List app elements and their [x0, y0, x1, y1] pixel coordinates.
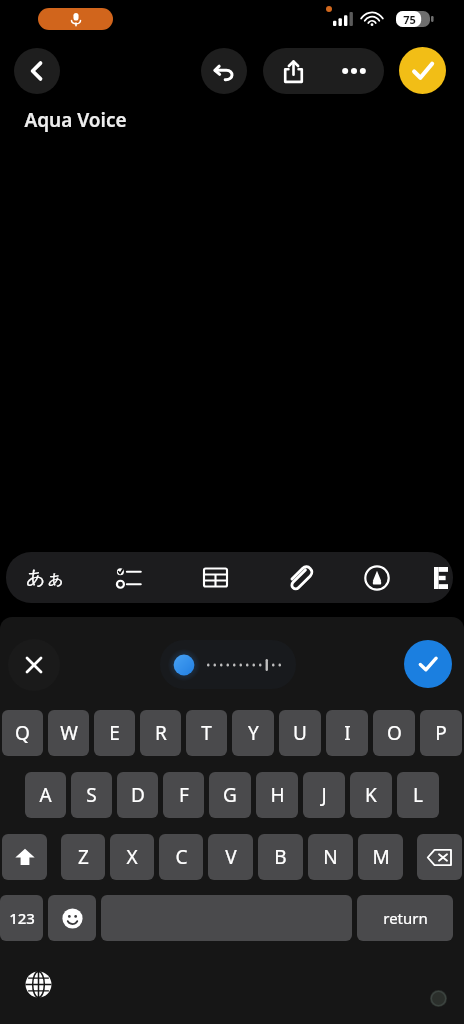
- button[interactable]: I: [326, 710, 368, 756]
- staticText: Aqua Voice: [24, 107, 127, 133]
- button[interactable]: Confirm dictation: [404, 640, 452, 688]
- staticText: F: [179, 782, 189, 808]
- button[interactable]: Shift: [2, 834, 47, 880]
- button[interactable]: C: [159, 834, 203, 880]
- button[interactable]: Dictation waveform: [160, 640, 296, 689]
- staticText: H: [270, 782, 285, 808]
- staticText: R: [155, 720, 167, 746]
- button[interactable]: O: [373, 710, 415, 756]
- staticText: B: [274, 844, 287, 870]
- button[interactable]: Share: [263, 48, 323, 94]
- button[interactable]: Done: [399, 47, 446, 94]
- button[interactable]: X: [110, 834, 154, 880]
- button[interactable]: R: [140, 710, 181, 756]
- button[interactable]: Table: [187, 552, 243, 603]
- button[interactable]: H: [256, 772, 298, 818]
- staticText: O: [387, 720, 402, 746]
- button[interactable]: J: [303, 772, 345, 818]
- staticText: return: [383, 908, 428, 928]
- staticText: G: [223, 782, 237, 808]
- button[interactable]: Emoji suggestions: [424, 984, 452, 1012]
- button[interactable]: Text format: [14, 552, 76, 603]
- staticText: 123: [9, 908, 35, 928]
- button[interactable]: Back: [14, 48, 60, 94]
- button[interactable]: return: [357, 895, 453, 941]
- staticText: J: [321, 782, 327, 808]
- button[interactable]: N: [308, 834, 353, 880]
- staticText: あぁ: [26, 566, 65, 590]
- button[interactable]: Markup: [349, 552, 405, 603]
- staticText: X: [126, 844, 138, 870]
- button[interactable]: Y: [232, 710, 274, 756]
- button[interactable]: Z: [61, 834, 105, 880]
- staticText: M: [372, 844, 390, 870]
- button[interactable]: G: [209, 772, 251, 818]
- button[interactable]: A: [25, 772, 66, 818]
- staticText: K: [365, 782, 377, 808]
- button[interactable]: U: [279, 710, 321, 756]
- button[interactable]: L: [397, 772, 439, 818]
- staticText: L: [413, 782, 423, 808]
- button[interactable]: 123: [0, 895, 43, 941]
- other: Microphone active: [38, 8, 113, 30]
- button[interactable]: Undo: [201, 48, 247, 94]
- button[interactable]: Backspace: [417, 834, 462, 880]
- button[interactable]: S: [71, 772, 112, 818]
- button[interactable]: E: [94, 710, 135, 756]
- button[interactable]: T: [186, 710, 227, 756]
- staticText: 75: [403, 12, 416, 27]
- staticText: E: [109, 720, 120, 746]
- button[interactable]: V: [208, 834, 253, 880]
- button[interactable]: F: [163, 772, 204, 818]
- button[interactable]: P: [420, 710, 462, 756]
- staticText: Z: [78, 844, 89, 870]
- button[interactable]: M: [358, 834, 403, 880]
- staticText: P: [435, 720, 447, 746]
- button[interactable]: More tools: [434, 552, 453, 603]
- staticText: T: [201, 720, 212, 746]
- button[interactable]: Checklist: [101, 552, 157, 603]
- staticText: Y: [248, 720, 259, 746]
- button[interactable]: Attach: [271, 552, 327, 603]
- staticText: V: [225, 844, 237, 870]
- button[interactable]: Close dictation: [8, 639, 60, 691]
- staticText: A: [39, 782, 52, 808]
- staticText: S: [86, 782, 97, 808]
- staticText: C: [175, 844, 188, 870]
- staticText: Q: [15, 720, 30, 746]
- button[interactable]: Change keyboard: [16, 962, 60, 1006]
- button[interactable]: W: [48, 710, 89, 756]
- staticText: W: [60, 720, 78, 746]
- staticText: I: [344, 720, 351, 746]
- button[interactable]: K: [350, 772, 392, 818]
- button[interactable]: More options: [323, 48, 384, 94]
- staticText: U: [293, 720, 307, 746]
- staticText: N: [323, 844, 338, 870]
- button[interactable]: D: [117, 772, 158, 818]
- staticText: D: [131, 782, 145, 808]
- button[interactable]: B: [258, 834, 303, 880]
- button[interactable]: Q: [2, 710, 43, 756]
- button[interactable]: Emoji: [48, 895, 96, 941]
